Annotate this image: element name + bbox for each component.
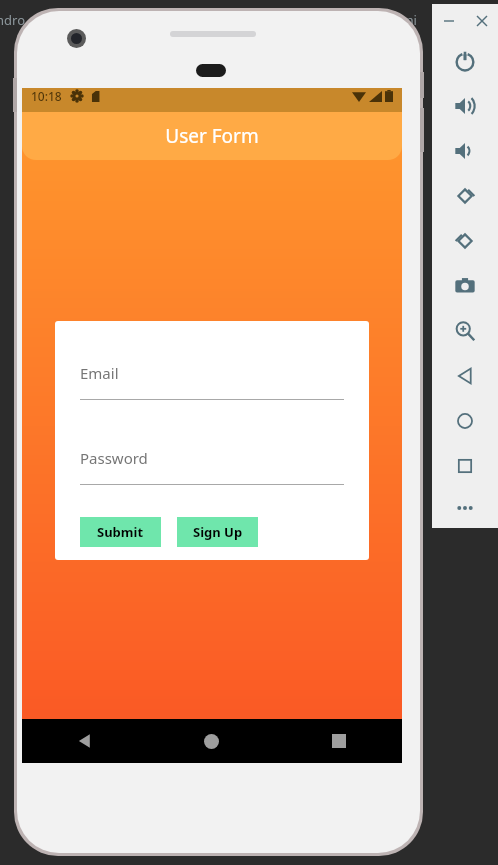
button[interactable]: More	[432, 488, 498, 528]
button[interactable]: Overview	[432, 443, 498, 488]
button[interactable]: Volume up	[432, 83, 498, 128]
button[interactable]: Submit	[80, 517, 161, 547]
button[interactable]: Back	[22, 719, 148, 763]
staticText: ndro	[0, 11, 26, 29]
staticText: Sign Up	[193, 523, 243, 541]
staticText: Submit	[97, 523, 144, 541]
button[interactable]: Zoom	[432, 308, 498, 353]
staticText: Password	[80, 448, 148, 468]
button[interactable]: Home	[148, 719, 275, 763]
button[interactable]: Email	[80, 363, 344, 400]
button[interactable]: Password	[80, 448, 344, 485]
staticText: User Form	[165, 123, 259, 149]
button[interactable]: Sign Up	[177, 517, 258, 547]
staticText: lumi	[390, 11, 417, 29]
button[interactable]: Home	[432, 398, 498, 443]
button[interactable]: Minimize	[432, 4, 465, 38]
button[interactable]: Recent apps	[275, 719, 402, 763]
button[interactable]: Rotate left	[432, 173, 498, 218]
button[interactable]: Close	[465, 4, 498, 38]
button[interactable]: Power	[432, 38, 498, 83]
button[interactable]: Rotate right	[432, 218, 498, 263]
button[interactable]: Take screenshot	[432, 263, 498, 308]
button[interactable]: Volume down	[432, 128, 498, 173]
staticText: Email	[80, 363, 119, 383]
staticText: 10:18	[31, 88, 62, 104]
button[interactable]: Back	[432, 353, 498, 398]
